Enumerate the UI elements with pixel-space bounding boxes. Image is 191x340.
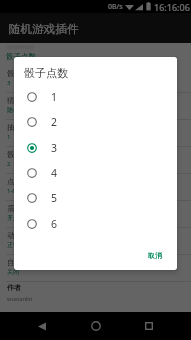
staticText: 正常	[7, 241, 19, 249]
button[interactable]: 5	[14, 185, 177, 210]
staticText: 抽签张数	[7, 123, 37, 132]
staticText: 1	[51, 90, 58, 104]
staticText: 取消	[148, 251, 162, 260]
button[interactable]: 2	[14, 109, 177, 134]
staticText: 随机游戏插件	[9, 22, 79, 37]
staticText: 骰子点数	[24, 66, 68, 80]
button[interactable]: 4	[14, 160, 177, 185]
staticText: 16:16:06	[154, 1, 190, 13]
button[interactable]: 6	[14, 211, 177, 236]
staticText: 1-6	[7, 187, 16, 195]
staticText: 作者	[7, 283, 21, 292]
staticText: 点数范围	[7, 177, 37, 186]
staticText: wuxianlin	[7, 295, 33, 303]
staticText: 骰子个数	[7, 150, 37, 159]
staticText: 猜拳结果	[7, 96, 37, 105]
staticText: 5	[51, 191, 58, 205]
staticText: 2	[7, 160, 11, 168]
staticText: 骰子点数	[7, 69, 37, 78]
button[interactable]: Home	[79, 312, 113, 340]
staticText: 0B/s	[108, 2, 123, 12]
staticText: 3	[51, 141, 58, 155]
staticText: 自动重置	[7, 258, 37, 267]
staticText: 2	[51, 115, 58, 129]
staticText: 3	[7, 79, 11, 87]
button[interactable]: Back	[25, 312, 59, 340]
staticText: 动画速度	[7, 231, 37, 240]
staticText: 6	[51, 217, 58, 231]
staticText: 震动反馈	[7, 204, 37, 213]
button[interactable]: 3	[14, 135, 177, 160]
staticText: 1	[7, 133, 11, 141]
staticText: 随机	[7, 106, 19, 114]
staticText: 骰子点数	[6, 52, 36, 61]
button[interactable]: Recents	[132, 312, 166, 340]
button[interactable]: 取消	[140, 246, 170, 265]
staticText: 4	[51, 166, 58, 180]
button[interactable]: 1	[14, 84, 177, 109]
staticText: 开启	[7, 214, 19, 222]
staticText: 关闭	[7, 268, 19, 276]
